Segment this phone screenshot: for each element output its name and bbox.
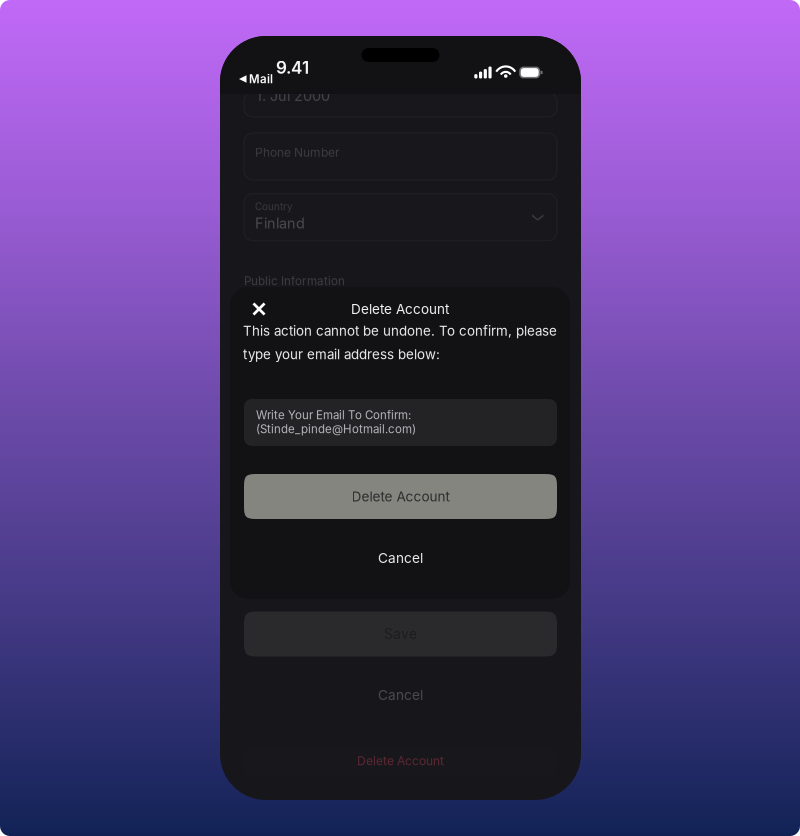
staticText: type your email address below: bbox=[243, 346, 440, 362]
staticText: Delete Account bbox=[357, 754, 444, 768]
button[interactable]: Delete Account bbox=[244, 746, 557, 776]
staticText: 1. Jul 2000 bbox=[256, 87, 330, 104]
staticText: 9.41 bbox=[276, 57, 309, 78]
staticText: Delete Account bbox=[351, 301, 449, 317]
staticText: Write Your Email To Confirm: bbox=[256, 408, 411, 422]
button[interactable]: Cancel bbox=[244, 545, 557, 571]
button[interactable]: Write Your Email To Confirm: bbox=[244, 399, 557, 446]
staticText: Cancel bbox=[378, 687, 423, 703]
staticText: Phone Number bbox=[255, 145, 340, 159]
staticText: Country bbox=[255, 201, 293, 213]
button[interactable]: Close bbox=[246, 296, 272, 322]
staticText: Save bbox=[384, 626, 417, 642]
staticText: Mail bbox=[249, 72, 273, 86]
staticText: Public Information bbox=[244, 274, 345, 288]
staticText: Delete Account bbox=[351, 488, 449, 505]
staticText: This action cannot be undone. To confirm… bbox=[243, 323, 557, 339]
button[interactable]: Mail bbox=[239, 73, 299, 85]
button[interactable]: Delete Account bbox=[244, 474, 557, 519]
button[interactable]: Cancel bbox=[244, 675, 557, 715]
staticText: Cancel bbox=[378, 550, 423, 566]
staticText: (Stinde_pinde@Hotmail.com) bbox=[256, 422, 416, 436]
staticText: Finland bbox=[255, 214, 305, 232]
